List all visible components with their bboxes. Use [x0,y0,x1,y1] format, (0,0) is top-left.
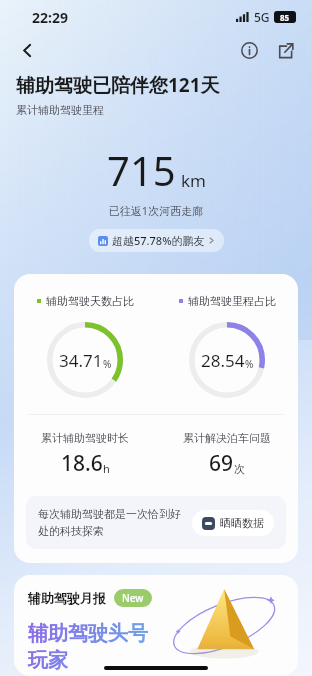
staticText: % [103,357,112,371]
staticText: 辅助驾驶已陪伴您121天 [16,72,220,98]
staticText: 累计辅助驾驶里程 [16,103,104,117]
staticText: 已往返1次河西走廊 [16,203,296,218]
staticText: 69 [209,449,234,478]
staticText: 次 [234,462,245,476]
staticText: New [122,591,144,605]
staticText: h [103,461,110,476]
staticText: km [181,169,206,192]
staticText: 28.54 [201,349,245,372]
button[interactable]: Back [12,35,42,65]
button[interactable]: Share [270,35,300,65]
button[interactable]: 晒晒数据 [192,510,274,536]
staticText: 715 [107,143,176,197]
staticText: % [245,357,254,371]
staticText: 18.6 [61,449,103,478]
staticText: 22:29 [32,8,68,27]
staticText: 晒晒数据 [220,516,264,530]
button[interactable]: Info [234,35,264,65]
staticText: 5G [254,9,270,25]
staticText: 超越57.78%的鹏友 [112,233,205,248]
staticText: 辅助驾驶里程占比 [188,294,276,308]
staticText: 每次辅助驾驶都是一次恰到好 处的科技探索 [38,507,184,538]
staticText: 辅助驾驶月报 [28,590,106,606]
staticText: 85 [280,12,290,23]
staticText: 累计解决泊车问题 [183,431,271,445]
staticText: 34.71 [59,349,103,372]
staticText: 辅助驾驶天数占比 [46,294,134,308]
staticText: 累计辅助驾驶时长 [41,431,129,445]
staticText: 辅助驾驶头号 玩家 [28,621,148,673]
button[interactable]: 辅助驾驶月报 [14,575,298,676]
button[interactable]: 超越57.78%的鹏友 [89,229,224,252]
